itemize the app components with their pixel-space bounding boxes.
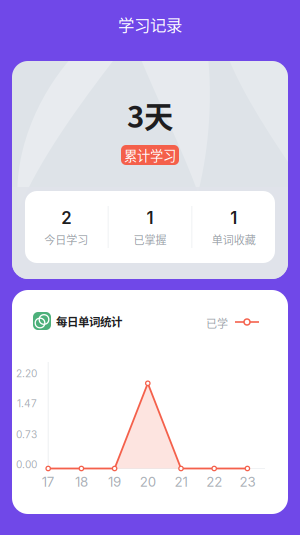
staticText: 已学 [206,315,228,331]
staticText: 今日学习 [44,231,88,247]
staticText: 0.73 [16,428,37,441]
staticText: 2.20 [16,367,37,380]
staticText: 1.47 [17,397,37,410]
staticText: 学习记录 [118,12,182,36]
staticText: 累计学习 [124,145,176,165]
staticText: 22 [206,474,222,490]
staticText: 2 [61,208,71,228]
staticText: 已掌握 [133,231,166,247]
staticText: 23 [239,474,255,490]
staticText: 1 [146,208,153,228]
staticText: 3天 [127,94,173,136]
staticText: 0.00 [16,458,37,471]
staticText: 17 [42,474,55,490]
staticText: 1 [230,208,237,228]
staticText: 18 [75,474,88,490]
staticText: 20 [140,474,156,490]
staticText: 21 [174,474,187,490]
staticText: 单词收藏 [212,231,256,247]
staticText: 19 [108,474,121,490]
staticText: 每日单词统计 [56,313,122,330]
